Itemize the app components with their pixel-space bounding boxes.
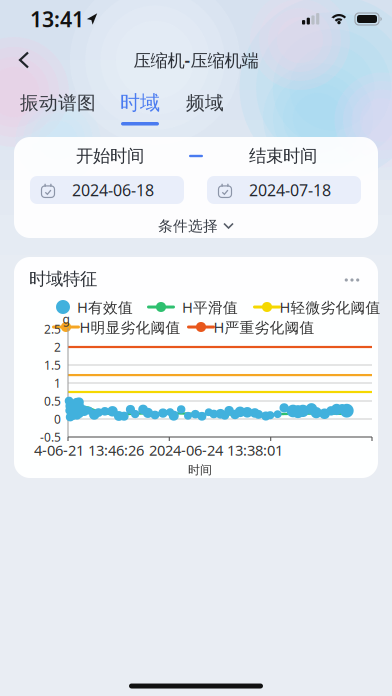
staticText: 2024-07-18 bbox=[249, 179, 331, 201]
staticText: 条件选择 bbox=[158, 217, 218, 235]
staticText: H明显劣化阈值 bbox=[79, 317, 180, 337]
staticText: H严重劣化阈值 bbox=[213, 317, 314, 337]
staticText: 4-06-21 13:46:26 bbox=[34, 440, 144, 460]
button[interactable]: 2024-07-18 bbox=[207, 176, 361, 204]
staticText: 时域 bbox=[120, 90, 160, 115]
staticText: g bbox=[62, 311, 69, 327]
staticText: 压缩机-压缩机端 bbox=[133, 48, 258, 71]
button[interactable]: 条件选择 bbox=[150, 211, 242, 241]
staticText: 时域特征 bbox=[29, 268, 97, 290]
staticText: H有效值 bbox=[77, 297, 133, 317]
staticText: 2024-06-24 13:38:01 bbox=[149, 440, 283, 460]
staticText: 2024-06-18 bbox=[72, 179, 154, 201]
staticText: H轻微劣化阈值 bbox=[279, 297, 380, 317]
button[interactable]: 振动谱图 bbox=[20, 91, 96, 114]
staticText: -0.5 bbox=[40, 429, 61, 445]
staticText: 开始时间 bbox=[76, 145, 144, 167]
staticText: 0.5 bbox=[44, 393, 61, 409]
staticText: 频域 bbox=[186, 91, 224, 114]
button[interactable]: Back bbox=[6, 41, 41, 78]
staticText: 13:41 bbox=[30, 5, 84, 33]
staticText: 0 bbox=[54, 411, 61, 427]
staticText: H平滑值 bbox=[182, 297, 238, 317]
button[interactable]: 频域 bbox=[186, 91, 224, 114]
staticText: 1 bbox=[54, 375, 61, 391]
staticText: 1.5 bbox=[44, 357, 61, 373]
button[interactable]: More bbox=[337, 270, 367, 290]
button[interactable]: 时域 bbox=[120, 90, 160, 126]
staticText: 振动谱图 bbox=[20, 91, 96, 114]
button[interactable]: 2024-06-18 bbox=[30, 176, 184, 204]
staticText: 时间 bbox=[188, 463, 212, 477]
staticText: 2 bbox=[54, 339, 61, 355]
staticText: 结束时间 bbox=[249, 145, 317, 167]
staticText: 2.5 bbox=[44, 321, 61, 337]
